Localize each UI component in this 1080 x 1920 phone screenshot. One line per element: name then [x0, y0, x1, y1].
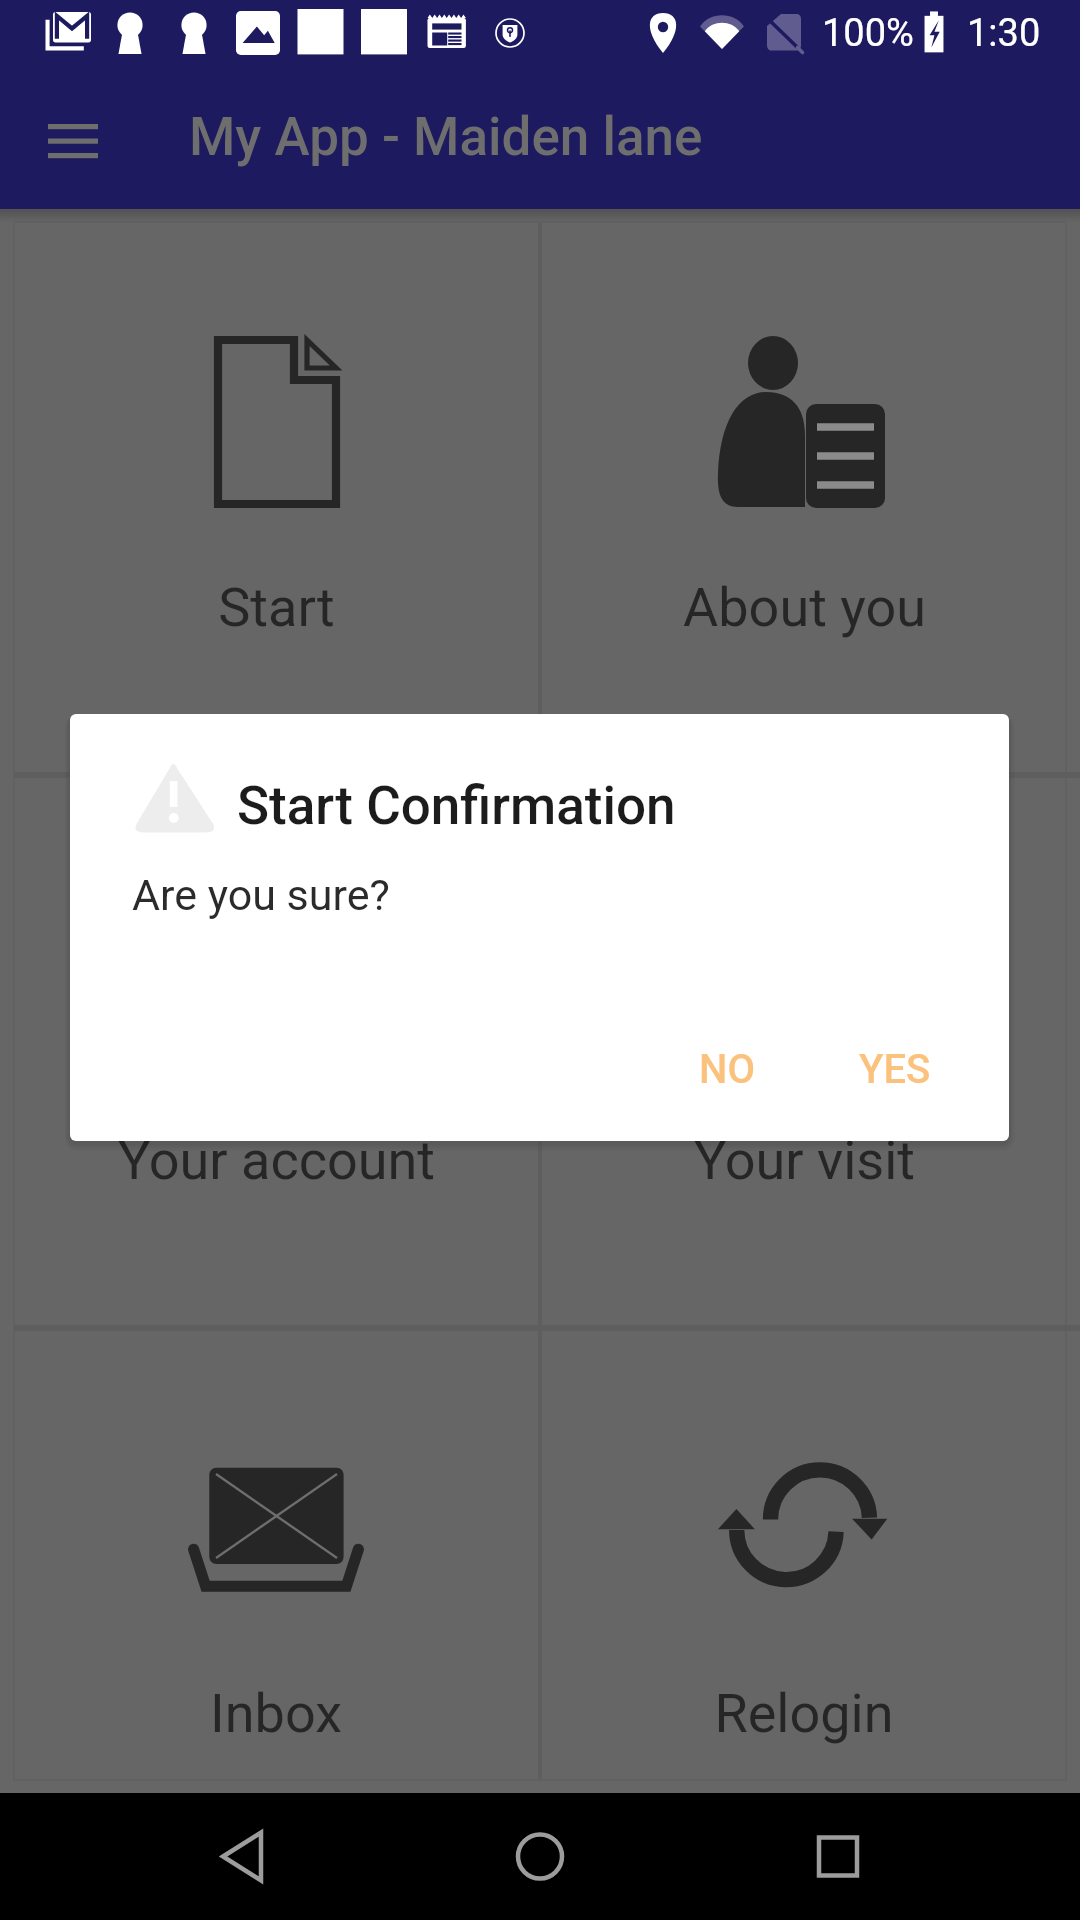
staticText: YES	[859, 1046, 931, 1093]
button[interactable]: Back	[155, 1793, 335, 1920]
staticText: 1:30	[967, 11, 1041, 56]
button[interactable]: Your visit	[542, 775, 1066, 1325]
button[interactable]: Home	[450, 1793, 630, 1920]
staticText: Start Confirmation	[237, 775, 676, 837]
button[interactable]: Inbox	[14, 1328, 538, 1781]
staticText: Relogin	[714, 1682, 894, 1745]
staticText: Inbox	[210, 1682, 342, 1745]
button[interactable]: YES	[827, 1020, 962, 1118]
button[interactable]: Open navigation menu	[24, 91, 122, 191]
staticText: NO	[699, 1046, 755, 1093]
staticText: Are you sure?	[132, 870, 390, 920]
button[interactable]: About you	[542, 222, 1066, 772]
staticText: Your account	[118, 1129, 435, 1192]
button[interactable]: Relogin	[542, 1328, 1066, 1781]
staticText: Start	[218, 576, 335, 639]
button[interactable]: Start	[14, 222, 538, 772]
staticText: Your visit	[694, 1129, 915, 1192]
staticText: About you	[683, 576, 926, 639]
staticText: 100%	[822, 11, 914, 56]
button[interactable]: Recent apps	[748, 1793, 928, 1920]
staticText: My App - Maiden lane	[189, 106, 703, 168]
button[interactable]: Your account	[14, 775, 538, 1325]
button[interactable]: NO	[662, 1020, 792, 1118]
